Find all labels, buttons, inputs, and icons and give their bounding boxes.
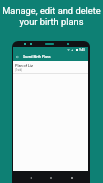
- button[interactable]: Home: [47, 174, 54, 181]
- staticText: 9:45: [79, 48, 86, 52]
- staticText: (1wk): [15, 68, 23, 71]
- staticText: Plan of Liz: [15, 63, 33, 67]
- staticText: Manage, edit and delete your birth plans: [2, 5, 101, 27]
- staticText: Saved Birth Plans: [23, 55, 51, 59]
- button[interactable]: Back: [15, 55, 19, 59]
- button[interactable]: Plan of Liz: [13, 61, 88, 73]
- button[interactable]: Recents: [68, 174, 75, 181]
- button[interactable]: Back: [27, 174, 34, 181]
